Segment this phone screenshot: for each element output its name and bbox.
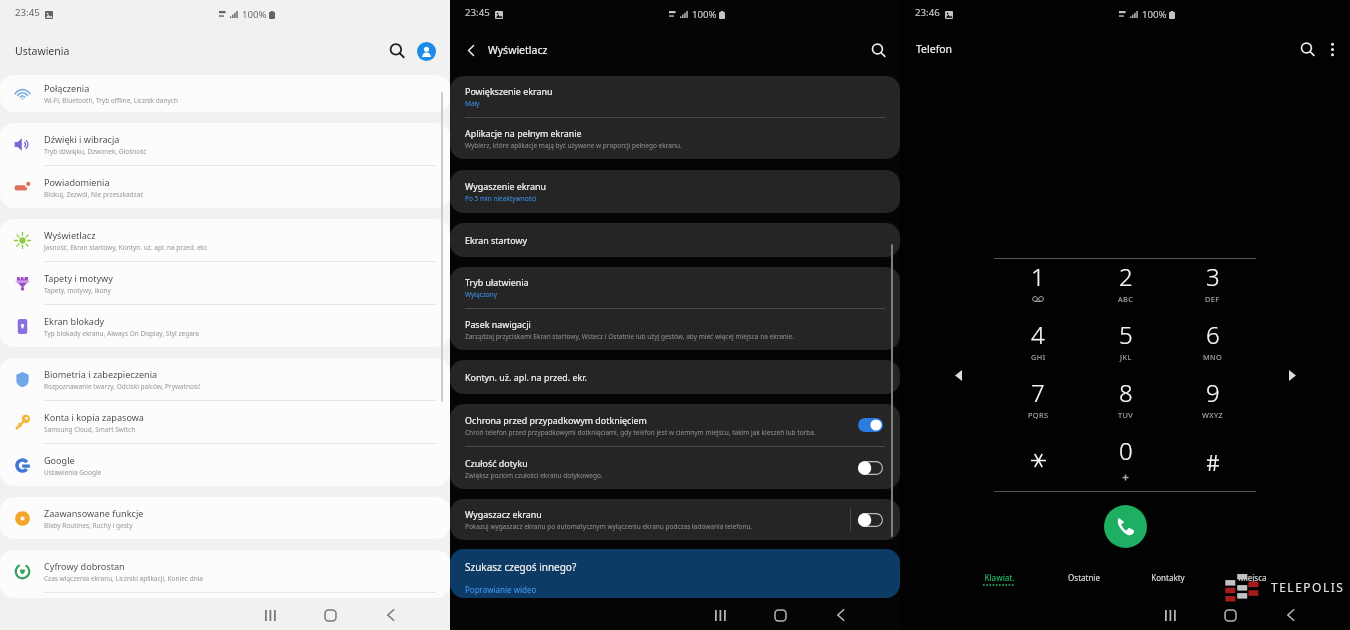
button[interactable]: Ochrona przed przypadkowym dotknięciem — [450, 404, 900, 446]
staticText: Klawiat. — [984, 572, 1015, 583]
button[interactable]: 1 — [994, 259, 1082, 317]
staticText: Kontakty — [1151, 572, 1185, 583]
button[interactable]: Toggle off — [858, 461, 883, 475]
button[interactable]: More options — [1320, 37, 1344, 61]
staticText: Blokuj, Zezwól, Nie przeszkadzać — [44, 190, 144, 199]
staticText: 3 — [1206, 260, 1220, 293]
staticText: Czułość dotyku — [465, 457, 528, 469]
button[interactable]: Aplikacje na pełnym ekranie — [450, 118, 900, 159]
button[interactable]: Search — [383, 37, 411, 65]
button[interactable]: Home — [315, 600, 345, 630]
staticText: Tapety, motywy, ikony — [44, 286, 111, 295]
button[interactable]: Recents — [705, 600, 735, 630]
button[interactable]: Czułość dotyku — [450, 447, 900, 489]
staticText: Zaawansowane funkcje — [44, 507, 144, 519]
button[interactable]: Recents — [255, 600, 285, 630]
staticText: 4 — [1031, 318, 1045, 351]
button[interactable]: Home — [1215, 600, 1245, 630]
staticText: PQRS — [1028, 410, 1049, 420]
button[interactable]: Zaawansowane funkcje — [0, 497, 450, 539]
staticText: 7 — [1031, 376, 1045, 409]
button[interactable]: Next page — [1283, 366, 1301, 384]
button[interactable]: Back — [457, 36, 485, 64]
button[interactable]: Call — [1104, 505, 1147, 548]
staticText: Powiadomienia — [44, 176, 110, 188]
button[interactable]: Previous page — [949, 366, 967, 384]
staticText: Tryb ułatwienia — [465, 276, 529, 288]
staticText: Jasność, Ekran startowy, Kontyn. uż. apl… — [44, 243, 208, 252]
button[interactable]: Cyfrowy dobrostan — [0, 550, 450, 592]
button[interactable]: 6 — [1169, 317, 1256, 375]
button[interactable]: 9 — [1169, 375, 1256, 433]
button[interactable]: Połączenia — [0, 75, 450, 112]
button[interactable]: 4 — [994, 317, 1082, 375]
button[interactable]: Back — [1275, 600, 1305, 630]
button[interactable]: Tryb ułatwienia — [450, 267, 900, 308]
staticText: 6 — [1206, 318, 1220, 351]
staticText: 8 — [1119, 376, 1133, 409]
button[interactable]: Wygaszacz ekranu — [450, 499, 900, 540]
button[interactable] — [1169, 433, 1256, 491]
staticText: 23:45 — [465, 6, 490, 19]
staticText: Ekran startowy — [465, 234, 528, 246]
staticText: Chroń telefon przed przypadkowymi dotkni… — [465, 428, 816, 437]
button[interactable]: Wygaszenie ekranu — [450, 170, 900, 213]
button[interactable]: Tapety i motywy — [0, 262, 450, 304]
staticText: Dźwięki i wibracja — [44, 133, 120, 145]
staticText: JKL — [1120, 352, 1132, 362]
button[interactable]: Klawiat. — [971, 570, 1027, 588]
button[interactable]: Wyświetlacz — [0, 219, 450, 261]
staticText: Telefon — [916, 42, 953, 56]
staticText: 23:45 — [15, 6, 40, 19]
button[interactable]: Back — [375, 600, 405, 630]
button[interactable]: 0 — [1082, 433, 1169, 491]
staticText: 5 — [1119, 318, 1133, 351]
button[interactable]: 8 — [1082, 375, 1169, 433]
button[interactable]: Powiadomienia — [0, 166, 450, 208]
button[interactable]: Toggle on — [858, 418, 883, 432]
button[interactable]: 7 — [994, 375, 1082, 433]
button[interactable]: Ostatnie — [1056, 570, 1112, 585]
button[interactable]: Konta i kopia zapasowa — [0, 401, 450, 443]
button[interactable]: Miejsca — [1224, 570, 1280, 585]
button[interactable]: Ekran blokady — [0, 305, 450, 347]
staticText: Rozpoznawanie twarzy, Odciski palców, Pr… — [44, 382, 201, 391]
staticText: Ustawienia — [15, 44, 70, 58]
button[interactable]: 5 — [1082, 317, 1169, 375]
button[interactable]: Search — [865, 37, 891, 63]
staticText: Po 5 min nieaktywności — [465, 194, 537, 203]
staticText: Czas włączenia ekranu, Liczniki aplikacj… — [44, 574, 203, 583]
button[interactable]: 2 — [1082, 259, 1169, 317]
button[interactable] — [994, 433, 1082, 491]
button[interactable]: Pasek nawigacji — [450, 309, 900, 350]
button[interactable]: Dźwięki i wibracja — [0, 123, 450, 165]
button[interactable]: Kontakty — [1140, 570, 1196, 585]
button[interactable]: Search — [1294, 36, 1320, 62]
staticText: 100% — [242, 8, 267, 21]
staticText: Cyfrowy dobrostan — [44, 560, 125, 572]
staticText: WXYZ — [1202, 410, 1224, 420]
button[interactable]: Recents — [1155, 600, 1185, 630]
button[interactable]: Kontyn. uż. apl. na przed. ekr. — [450, 360, 900, 394]
button[interactable]: Home — [765, 600, 795, 630]
staticText: Zarządzaj przyciskami Ekran startowy, Ws… — [465, 332, 794, 341]
staticText: Ustawienia Google — [44, 468, 102, 477]
button[interactable]: Ekran startowy — [450, 223, 900, 257]
button[interactable]: Szukasz czegoś innego? — [450, 549, 900, 598]
staticText: Wygaszacz ekranu — [465, 508, 542, 520]
staticText: Zwiększ poziom czułości ekranu dotykoweg… — [465, 471, 603, 480]
staticText: Tapety i motywy — [44, 272, 113, 284]
button[interactable]: Google — [0, 444, 450, 486]
staticText: 9 — [1206, 376, 1220, 409]
button[interactable]: 3 — [1169, 259, 1256, 317]
staticText: Wyświetlacz — [44, 229, 96, 241]
button[interactable]: Back — [825, 600, 855, 630]
staticText: 23:46 — [915, 6, 940, 19]
staticText: Samsung Cloud, Smart Switch — [44, 425, 136, 434]
button[interactable]: Account — [412, 37, 440, 65]
staticText: Miejsca — [1238, 572, 1267, 583]
button[interactable]: Powiększenie ekranu — [450, 76, 900, 117]
button[interactable]: Biometria i zabezpieczenia — [0, 358, 450, 400]
button[interactable]: Toggle off — [858, 513, 883, 527]
staticText: Pokazuj wygaszacz ekranu po automatyczny… — [465, 522, 753, 531]
